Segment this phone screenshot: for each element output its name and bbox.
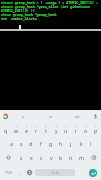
button[interactable]: k: [76, 136, 86, 150]
button[interactable]: y: [9, 110, 37, 122]
staticText: w: [14, 127, 19, 134]
button[interactable]: 9: [81, 122, 91, 136]
staticText: 6: [56, 124, 58, 127]
staticText: 7: [65, 124, 67, 127]
staticText: e: [25, 127, 28, 134]
button[interactable]: Change language: [24, 166, 34, 179]
button[interactable]: Shift: [0, 150, 16, 165]
staticText: 8: [75, 124, 77, 127]
button[interactable]: 2: [11, 122, 21, 136]
button[interactable]: 3: [21, 122, 31, 136]
button[interactable]: si: [37, 110, 64, 122]
staticText: f: [40, 140, 42, 147]
staticText: struc group_hash *group_hack: [1, 12, 101, 16]
staticText: o: [84, 127, 88, 134]
staticText: i: [75, 127, 77, 134]
button[interactable]: v: [46, 150, 56, 165]
staticText: m: [79, 154, 84, 161]
staticText: y: [22, 114, 24, 119]
staticText: 5: [45, 124, 47, 127]
button[interactable]: 5: [41, 122, 51, 136]
staticText: g: [49, 140, 53, 147]
staticText: k: [80, 140, 83, 147]
staticText: z: [20, 154, 23, 161]
button[interactable]: Google search: [2, 113, 9, 120]
staticText: 3: [26, 124, 28, 127]
staticText: .: [80, 170, 82, 175]
staticText: struct group_hash = { .usage } = ATOMIC_…: [1, 0, 101, 4]
button[interactable]: struct group_hash = { .usage } = ATOMIC_…: [0, 0, 101, 110]
staticText: s: [20, 140, 23, 147]
button[interactable]: x: [26, 150, 36, 165]
staticText: c: [40, 154, 43, 161]
button[interactable]: d: [26, 136, 36, 150]
button[interactable]: h: [56, 136, 66, 150]
button[interactable]: 1: [0, 122, 11, 136]
button[interactable]: c: [36, 150, 46, 165]
staticText: si: [49, 114, 52, 119]
button[interactable]: Comma: [15, 166, 24, 179]
button[interactable]: Enter: [89, 169, 97, 177]
staticText: struct group_hash *grou_alloc (int gidre…: [1, 4, 101, 8]
staticText: 9: [85, 124, 87, 127]
button[interactable]: m: [76, 150, 86, 165]
staticText: d: [29, 140, 33, 147]
staticText: 1: [5, 124, 7, 127]
button[interactable]: a: [6, 136, 16, 150]
button[interactable]: l: [86, 136, 96, 150]
button[interactable]: no: [64, 110, 91, 122]
staticText: no: [75, 114, 80, 119]
staticText: 4: [36, 124, 38, 127]
button[interactable]: ?123: [1, 166, 15, 179]
button[interactable]: 4: [31, 122, 41, 136]
staticText: n: [69, 154, 73, 161]
button[interactable]: 6: [51, 122, 61, 136]
button[interactable]: n: [66, 150, 76, 165]
staticText: x: [30, 154, 33, 161]
staticText: ?123: [5, 171, 12, 175]
staticText: r: [35, 127, 38, 134]
staticText: GO-EN: [51, 171, 60, 175]
button[interactable]: 0: [91, 122, 101, 136]
button[interactable]: 7: [61, 122, 71, 136]
staticText: q: [4, 127, 8, 134]
button[interactable]: j: [66, 136, 76, 150]
staticText: j: [70, 140, 72, 147]
staticText: h: [59, 140, 63, 147]
staticText: 2: [16, 124, 18, 127]
button[interactable]: z: [16, 150, 26, 165]
button[interactable]: s: [16, 136, 26, 150]
button[interactable]: Voice input: [91, 110, 99, 122]
staticText: a: [10, 140, 13, 147]
staticText: ,: [19, 170, 21, 175]
staticText: u: [64, 127, 68, 134]
staticText: v: [50, 154, 53, 161]
staticText: ATOMIC_INIT(2) }{: [1, 8, 101, 12]
staticText: y: [55, 127, 58, 134]
staticText: int number_blocks: [1, 16, 101, 20]
staticText: b: [59, 154, 63, 161]
button[interactable]: f: [36, 136, 46, 150]
button[interactable]: Space: [35, 169, 75, 176]
staticText: t: [45, 127, 47, 134]
button[interactable]: b: [56, 150, 66, 165]
button[interactable]: 8: [71, 122, 81, 136]
staticText: 0: [95, 124, 97, 127]
button[interactable]: Backspace: [86, 150, 101, 165]
staticText: l: [90, 140, 92, 147]
button[interactable]: g: [46, 136, 56, 150]
staticText: p: [94, 127, 98, 134]
